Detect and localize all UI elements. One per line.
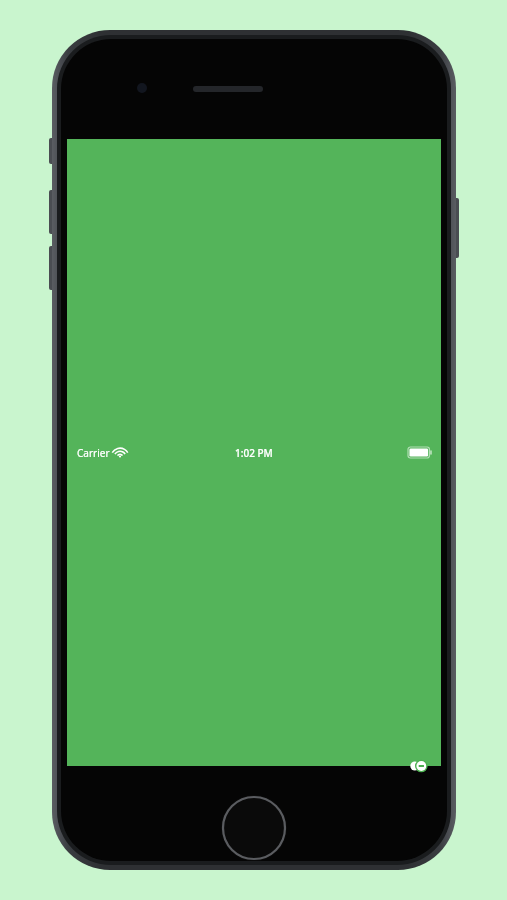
- staticText: Carrier: [77, 446, 110, 460]
- staticText: 1:02 PM: [235, 446, 273, 460]
